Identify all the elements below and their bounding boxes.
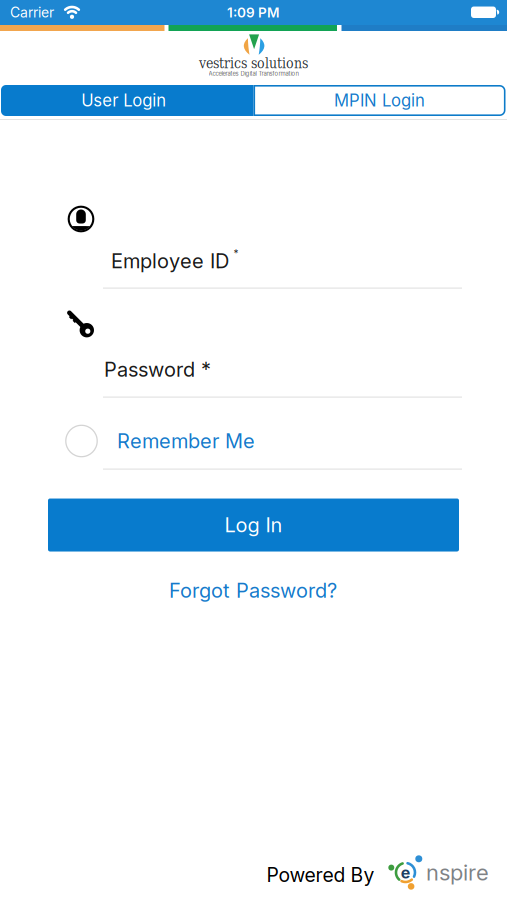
button[interactable]: Forgot Password? [169, 578, 337, 603]
staticText: 1:09 PM [227, 4, 280, 21]
staticText: MPIN Login [334, 90, 425, 111]
button[interactable]: User Login [1, 85, 253, 116]
staticText: Accelerates Digital Transformation [208, 70, 298, 77]
staticText: User Login [81, 90, 166, 111]
staticText: vestrics solutions [199, 55, 308, 72]
staticText: Carrier [10, 4, 54, 21]
staticText: Employee ID [111, 249, 229, 273]
staticText: Remember Me [117, 429, 255, 453]
staticText: e [401, 863, 411, 882]
button[interactable]: Remember Me [65, 424, 255, 457]
staticText: nspire [426, 859, 489, 886]
staticText: * [233, 247, 238, 260]
staticText: Powered By [266, 863, 374, 887]
button[interactable]: Log In [48, 498, 459, 551]
button[interactable]: MPIN Login [253, 85, 505, 116]
staticText: Log In [224, 513, 282, 537]
staticText: Forgot Password? [169, 578, 337, 603]
staticText: Password * [104, 357, 211, 382]
